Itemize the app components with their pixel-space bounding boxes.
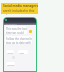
staticText: Social media managers [3, 4, 38, 8]
staticText: Follow the channel to [6, 37, 32, 41]
staticText: aren't included in this [3, 9, 35, 13]
button[interactable]: Social media managers [1, 3, 38, 14]
button[interactable]: Yesterday [6, 50, 14, 54]
button[interactable]: This was the last [5, 26, 27, 34]
staticText: messages [5, 22, 17, 25]
button[interactable]: Conversation header [4, 18, 36, 25]
staticText: Message [7, 63, 15, 66]
staticText: This was the last [6, 27, 27, 31]
staticText: time we could post [6, 31, 27, 34]
staticText: New update [19, 51, 28, 54]
staticText: stay up to date with [6, 41, 31, 44]
button[interactable]: Message [6, 62, 15, 66]
button[interactable]: New update [18, 50, 28, 54]
staticText: Yesterday [7, 51, 14, 54]
button[interactable]: Follow the channel to [5, 36, 32, 44]
staticText: release. [3, 14, 15, 15]
